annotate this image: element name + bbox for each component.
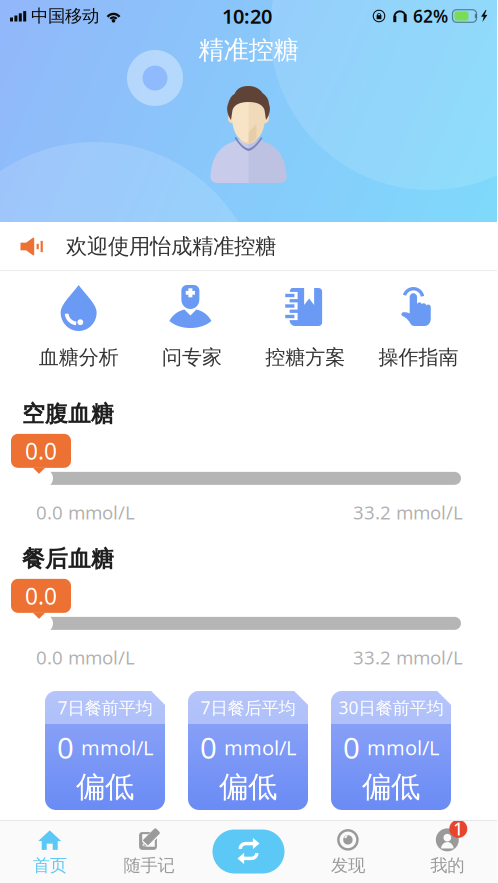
staticText: 欢迎使用怡成精准控糖 [66,233,276,260]
button[interactable]: 7日餐后平均 [188,691,308,810]
staticText: 33.2 mmol/L [353,645,463,670]
button[interactable]: 同步 [199,829,298,873]
staticText: 0.0 [25,436,57,466]
staticText: 62% [413,4,448,27]
button[interactable]: 随手记 [99,827,199,876]
staticText: 0.0 [25,581,57,611]
staticText: 偏低 [362,769,420,805]
staticText: 血糖分析 [39,345,119,370]
button[interactable]: 操作指南 [362,271,475,386]
staticText: 0.0 mmol/L [36,645,135,670]
button[interactable]: 7日餐前平均 [45,691,165,810]
staticText: 0 [200,728,217,767]
staticText: 首页 [33,855,67,876]
staticText: 0 [57,728,74,767]
staticText: 30日餐前平均 [338,696,443,719]
button[interactable]: 30日餐前平均 [331,691,451,810]
staticText: 发现 [331,855,365,876]
staticText: 操作指南 [378,345,458,370]
staticText: 问专家 [162,345,222,370]
button[interactable]: 发现 [298,827,398,876]
button[interactable]: 血糖分析 [22,271,135,386]
button[interactable]: 首页 [0,827,99,876]
staticText: 中国移动 [31,5,99,27]
staticText: 7日餐前平均 [57,696,152,719]
staticText: mmol/L [81,734,153,761]
button[interactable]: 欢迎使用怡成精准控糖 [0,222,497,271]
staticText: 0 [343,728,360,767]
staticText: 偏低 [219,769,277,805]
staticText: 控糖方案 [265,345,345,370]
button[interactable]: 问专家 [135,271,249,386]
staticText: 0.0 mmol/L [36,500,135,525]
button[interactable]: 控糖方案 [248,271,362,386]
staticText: 餐后血糖 [22,545,114,573]
staticText: mmol/L [224,734,296,761]
staticText: 1 [453,817,463,840]
button[interactable]: 1 [398,827,497,876]
staticText: 7日餐后平均 [200,696,295,719]
staticText: 33.2 mmol/L [353,500,463,525]
staticText: 偏低 [76,769,134,805]
staticText: mmol/L [367,734,439,761]
staticText: 随手记 [124,855,175,876]
staticText: 空腹血糖 [22,400,114,428]
staticText: 我的 [430,855,464,876]
staticText: 10:20 [222,3,272,29]
staticText: 精准控糖 [198,34,298,65]
